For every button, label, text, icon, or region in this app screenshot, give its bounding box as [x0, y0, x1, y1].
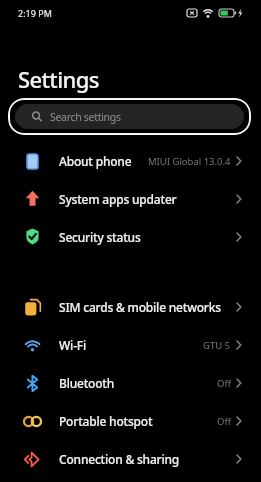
button[interactable]: System apps updater — [0, 180, 261, 218]
button[interactable]: Search settings — [8, 98, 251, 135]
button[interactable]: Security status — [0, 218, 261, 256]
staticText: Settings — [18, 64, 99, 94]
staticText: System apps updater — [59, 191, 177, 207]
staticText: Connection & sharing — [59, 451, 180, 467]
staticText: Search settings — [50, 110, 121, 124]
button[interactable]: Portable hotspot — [0, 402, 261, 440]
staticText: Portable hotspot — [59, 413, 153, 429]
staticText: Wi-Fi — [59, 337, 86, 353]
staticText: Bluetooth — [59, 375, 115, 391]
staticText: GTU 5 — [203, 339, 231, 352]
button[interactable]: Bluetooth — [0, 364, 261, 402]
button[interactable]: Wi-Fi — [0, 326, 261, 364]
staticText: MIUI Global 13.0.4 — [148, 155, 231, 168]
staticText: SIM cards & mobile networks — [59, 299, 221, 315]
button[interactable]: About phone — [0, 142, 261, 180]
staticText: Off — [217, 415, 231, 428]
button[interactable]: Connection & sharing — [0, 440, 261, 478]
staticText: Security status — [59, 229, 141, 245]
button[interactable]: SIM cards & mobile networks — [0, 288, 261, 326]
staticText: About phone — [59, 153, 132, 169]
staticText: 2:19 PM — [18, 7, 52, 19]
staticText: Off — [217, 377, 231, 390]
